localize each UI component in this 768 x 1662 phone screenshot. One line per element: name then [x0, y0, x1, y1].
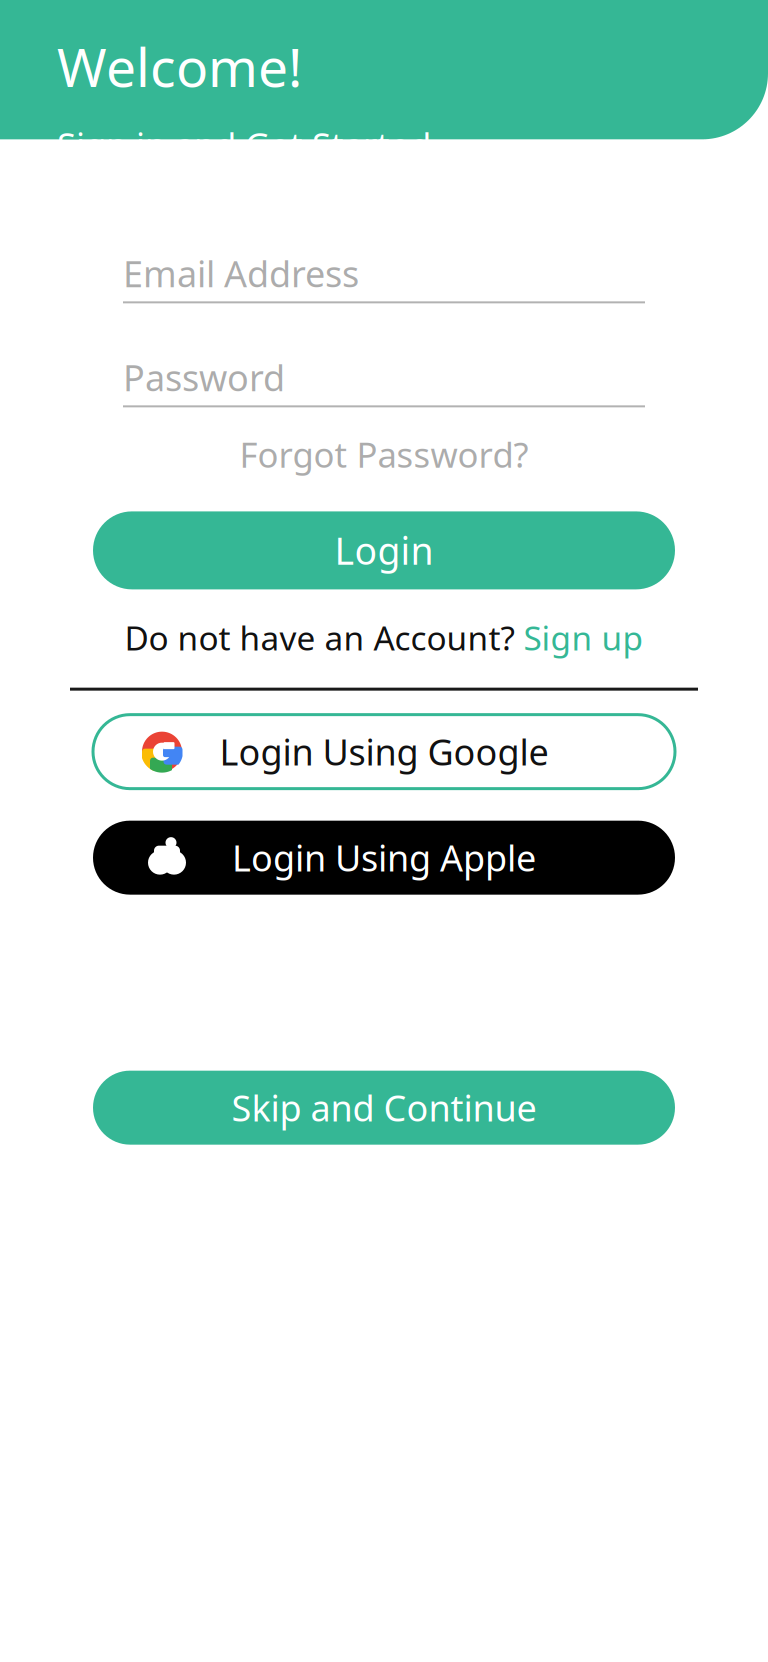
staticText: Login Using Apple	[232, 834, 536, 881]
staticText: Password	[123, 353, 285, 401]
staticText: Login Using Google	[219, 728, 548, 775]
button[interactable]: Skip and Continue	[93, 1071, 675, 1145]
staticText: Forgot Password?	[239, 431, 528, 477]
staticText: Sign up	[523, 615, 643, 660]
button[interactable]: Login Using Google	[93, 715, 675, 789]
staticText: Sign in and Get Started	[57, 122, 431, 168]
button[interactable]: Login	[93, 511, 675, 589]
staticText: Welcome!	[57, 31, 302, 102]
staticText: Do not have an Account?	[124, 615, 523, 660]
staticText: Login	[334, 526, 433, 575]
button[interactable]: Forgot Password?	[223, 423, 544, 485]
staticText: Skip and Continue	[231, 1084, 536, 1131]
button[interactable]: Do not have an Account?	[124, 607, 643, 668]
staticText: Email Address	[123, 249, 359, 297]
button[interactable]: Login Using Apple	[93, 821, 675, 895]
